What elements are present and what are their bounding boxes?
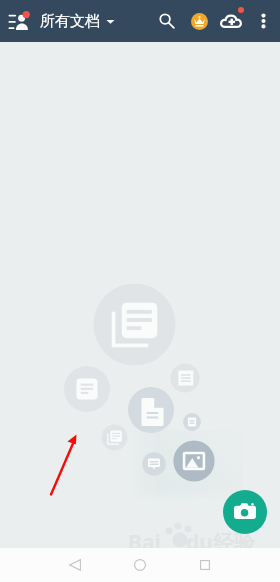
button[interactable]: Scan with camera [223, 490, 267, 534]
staticText: Bai [128, 528, 161, 557]
button[interactable]: Home [123, 548, 157, 582]
staticText: 所有文档 [40, 12, 100, 31]
button[interactable]: Open navigation menu [3, 0, 35, 42]
button[interactable]: More options [247, 0, 279, 42]
button[interactable]: 所有文档 [40, 0, 115, 42]
button[interactable]: Recent apps [188, 548, 222, 582]
staticText: du经验 [186, 528, 255, 557]
button[interactable]: Back [58, 548, 92, 582]
button[interactable]: Search [151, 0, 183, 42]
button[interactable]: Upload to cloud [215, 0, 247, 42]
button[interactable]: VIP membership [183, 0, 215, 42]
